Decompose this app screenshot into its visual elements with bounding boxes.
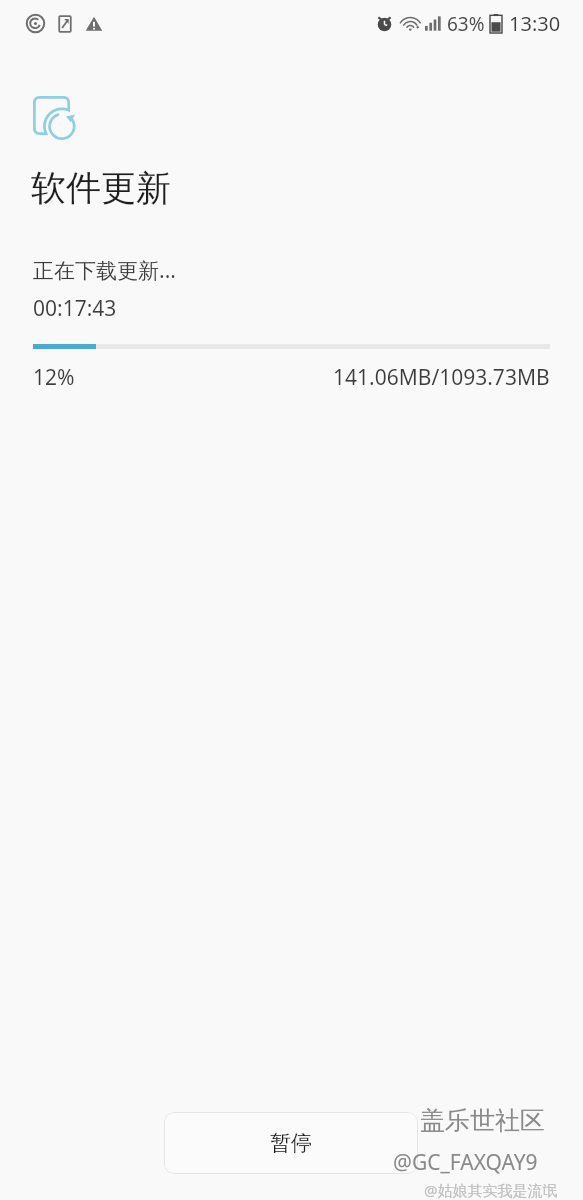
staticText: 13:30 — [509, 10, 561, 37]
staticText: @GC_FAXQAY9 — [393, 1148, 538, 1177]
button[interactable]: 暂停 — [164, 1112, 418, 1174]
staticText: @姑娘其实我是流氓 — [424, 1180, 558, 1200]
staticText: 正在下载更新... — [33, 256, 176, 285]
staticText: 软件更新 — [31, 166, 171, 210]
staticText: 63% — [447, 11, 485, 37]
other: Software update — [33, 96, 80, 143]
staticText: 141.06MB/1093.73MB — [333, 363, 550, 392]
staticText: 暂停 — [270, 1130, 312, 1156]
staticText: 盖乐世社区 — [420, 1105, 545, 1136]
staticText: 00:17:43 — [33, 294, 117, 323]
staticText: 12% — [33, 363, 75, 392]
